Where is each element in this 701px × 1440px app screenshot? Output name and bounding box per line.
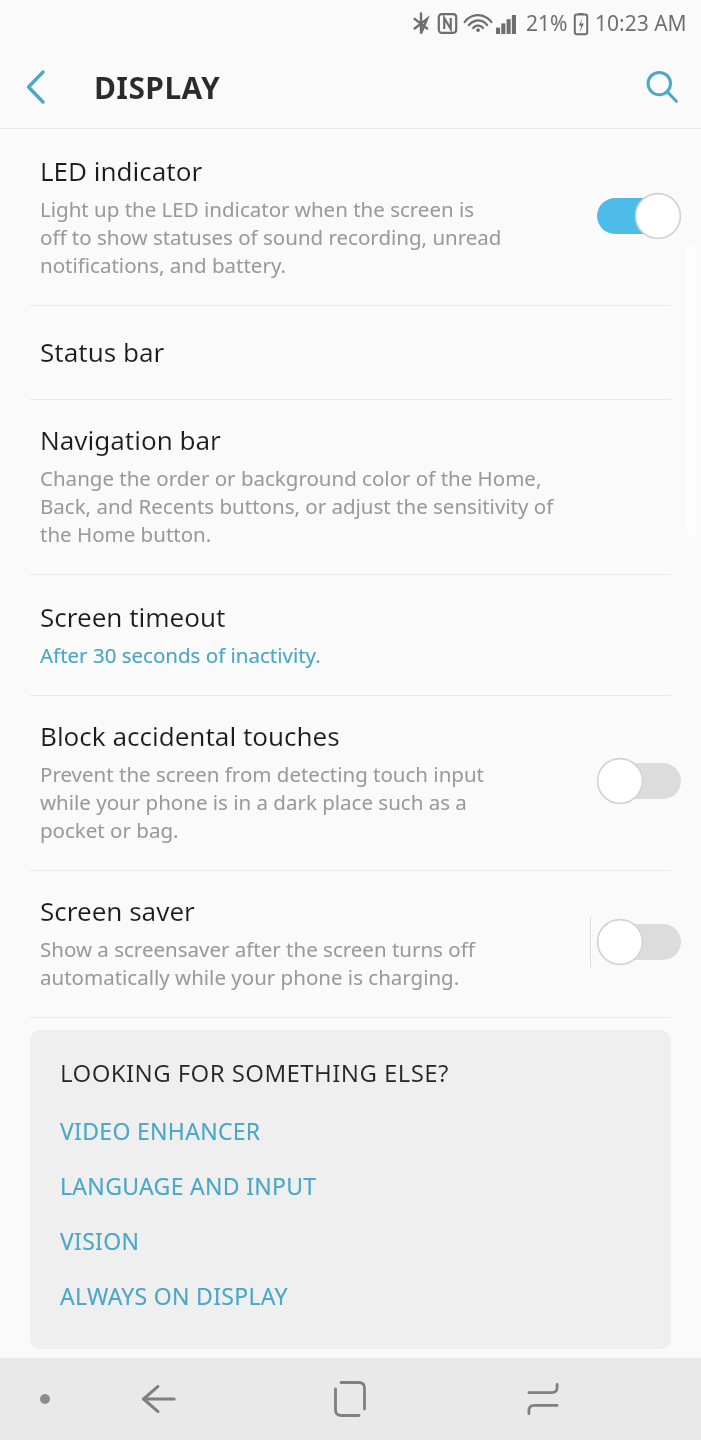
button[interactable]: ALWAYS ON DISPLAY bbox=[60, 1268, 641, 1323]
staticText: Screen timeout bbox=[40, 599, 226, 634]
staticText: Block accidental touches bbox=[40, 718, 340, 753]
button[interactable]: Back bbox=[88, 1358, 228, 1440]
button[interactable]: Search bbox=[623, 48, 701, 126]
button[interactable]: LED indicator bbox=[0, 129, 701, 305]
button[interactable]: Home bbox=[280, 1358, 420, 1440]
staticText: After 30 seconds of inactivity. bbox=[40, 641, 321, 669]
staticText: Change the order or background color of … bbox=[40, 464, 554, 548]
button[interactable]: Block accidental touches bbox=[0, 696, 701, 870]
button[interactable]: Recents bbox=[473, 1358, 613, 1440]
button[interactable]: VIDEO ENHANCER bbox=[60, 1103, 641, 1158]
button[interactable]: Navigation bar bbox=[0, 400, 701, 574]
staticText: Show a screensaver after the screen turn… bbox=[40, 935, 475, 991]
staticText: 21% bbox=[526, 9, 568, 38]
staticText: Status bar bbox=[40, 334, 165, 369]
button[interactable]: Screen saver toggle bbox=[591, 912, 687, 972]
button[interactable]: Block accidental touches toggle bbox=[591, 751, 687, 811]
button[interactable]: Back bbox=[0, 51, 72, 123]
staticText: 10:23 AM bbox=[595, 9, 687, 38]
staticText: LANGUAGE AND INPUT bbox=[60, 1170, 317, 1201]
button[interactable]: Screen timeout bbox=[0, 575, 701, 695]
staticText: LED indicator bbox=[40, 153, 203, 188]
button[interactable]: VISION bbox=[60, 1213, 641, 1268]
button[interactable]: Screen saver bbox=[0, 871, 701, 1017]
staticText: LOOKING FOR SOMETHING ELSE? bbox=[60, 1056, 449, 1089]
button[interactable]: LANGUAGE AND INPUT bbox=[60, 1158, 641, 1213]
button[interactable]: Status bar bbox=[0, 306, 701, 399]
button[interactable]: LED indicator toggle bbox=[591, 186, 687, 246]
staticText: Navigation bar bbox=[40, 422, 221, 457]
staticText: VISION bbox=[60, 1225, 140, 1256]
staticText: ALWAYS ON DISPLAY bbox=[60, 1280, 288, 1311]
staticText: Prevent the screen from detecting touch … bbox=[40, 760, 485, 844]
staticText: DISPLAY bbox=[94, 67, 221, 108]
staticText: Light up the LED indicator when the scre… bbox=[40, 195, 502, 279]
staticText: Screen saver bbox=[40, 893, 195, 928]
staticText: VIDEO ENHANCER bbox=[60, 1115, 261, 1146]
